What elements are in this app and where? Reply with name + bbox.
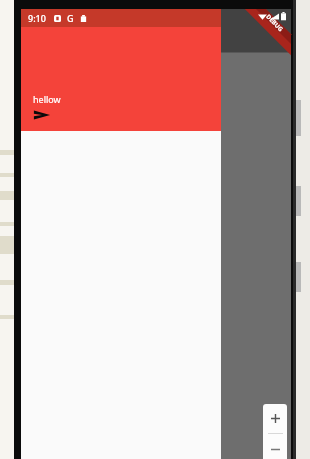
staticText: 9:10 bbox=[28, 12, 46, 24]
staticText: hellow bbox=[33, 93, 61, 105]
button[interactable]: Zoom in bbox=[263, 404, 287, 433]
staticText: G bbox=[67, 12, 74, 24]
button[interactable]: Zoom out bbox=[263, 434, 287, 459]
button[interactable]: Send bbox=[33, 109, 51, 121]
staticText: DEBUG bbox=[264, 13, 285, 33]
